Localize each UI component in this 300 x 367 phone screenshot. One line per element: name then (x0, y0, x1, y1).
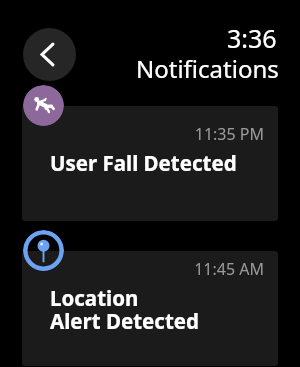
button[interactable]: Location alert (23, 230, 64, 271)
staticText: Notifications (136, 52, 279, 85)
staticText: Location Alert Detected (50, 284, 199, 335)
staticText: 11:45 AM (50, 258, 264, 280)
staticText: 3:36 (227, 21, 277, 55)
staticText: User Fall Detected (50, 149, 237, 177)
button[interactable]: 11:45 AM (22, 251, 278, 366)
button[interactable]: Fall detection alert (23, 85, 64, 126)
staticText: 11:35 PM (50, 123, 264, 145)
button[interactable]: Back (23, 28, 76, 81)
button[interactable]: 11:35 PM (22, 106, 278, 221)
